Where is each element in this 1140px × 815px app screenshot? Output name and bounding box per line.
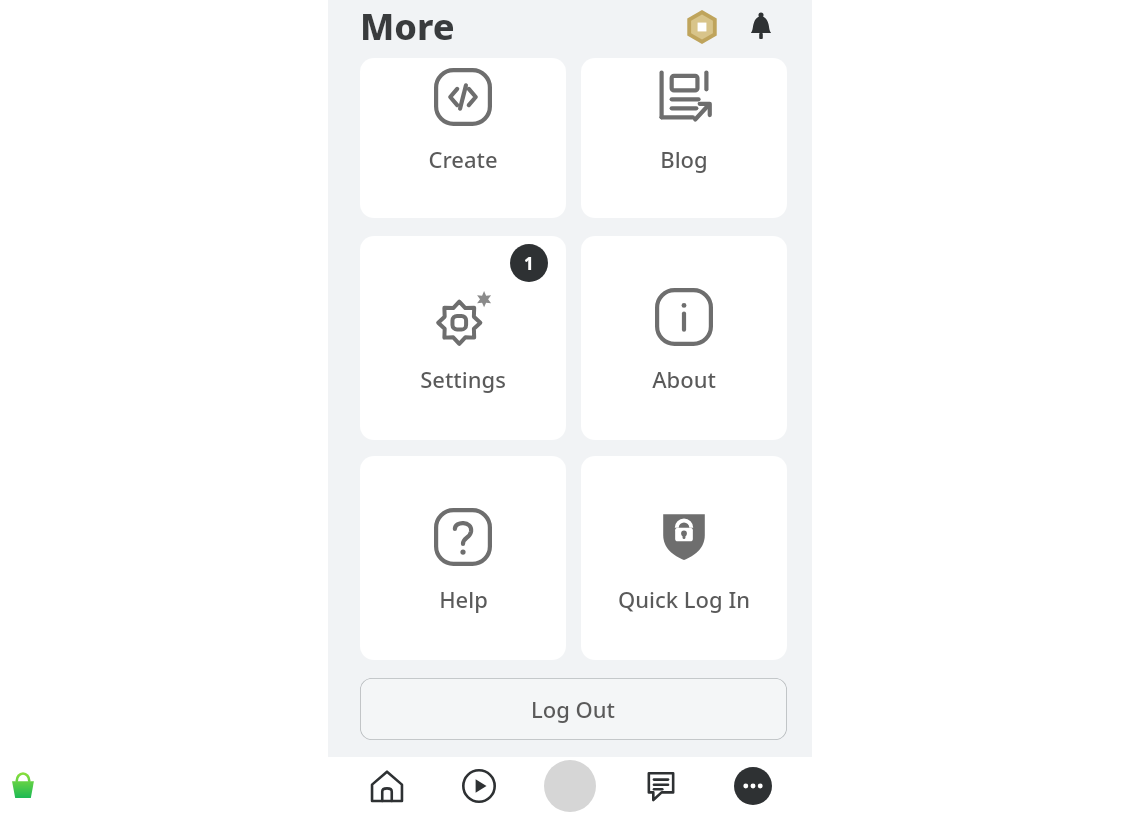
button[interactable]: Notifications	[740, 6, 782, 48]
button[interactable]: Blog	[581, 58, 787, 218]
button[interactable]: Shop	[0, 763, 46, 807]
staticText: Quick Log In	[618, 584, 750, 614]
button[interactable]: Log Out	[360, 678, 787, 740]
button[interactable]: Help	[360, 456, 566, 660]
button[interactable]: Charts	[447, 757, 511, 815]
button[interactable]: Home	[355, 757, 419, 815]
staticText: About	[652, 364, 716, 394]
staticText: Log Out	[531, 694, 616, 724]
other: Shop	[10, 772, 36, 798]
button[interactable]: Chat	[629, 757, 693, 815]
button[interactable]: Create	[360, 58, 566, 218]
button[interactable]: Quick Log In	[581, 456, 787, 660]
staticText: Create	[428, 144, 498, 174]
staticText: 1	[524, 252, 534, 275]
button[interactable]: Settings	[360, 236, 566, 440]
staticText: Help	[439, 584, 488, 614]
button[interactable]: More	[721, 757, 785, 815]
button[interactable]: Robux	[681, 6, 723, 48]
button[interactable]: Avatar	[538, 757, 602, 815]
staticText: Blog	[660, 144, 708, 174]
staticText: Settings	[420, 364, 506, 394]
button[interactable]: About	[581, 236, 787, 440]
staticText: More	[360, 2, 455, 51]
